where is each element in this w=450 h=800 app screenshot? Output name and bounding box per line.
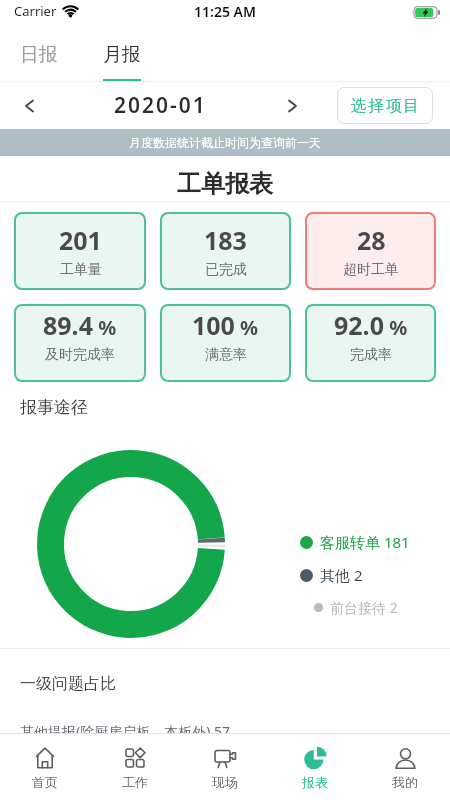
staticText: 一级问题占比: [20, 674, 116, 694]
staticText: 2020-01: [114, 91, 207, 120]
staticText: 首页: [32, 774, 58, 790]
button[interactable]: 183: [160, 212, 291, 290]
button[interactable]: 28: [305, 212, 436, 290]
button[interactable]: 日报: [20, 28, 58, 82]
staticText: 报表: [302, 774, 328, 790]
button[interactable]: 月报: [103, 28, 141, 82]
button[interactable]: 工作: [90, 734, 180, 800]
staticText: 100 %: [192, 308, 259, 342]
button[interactable]: 100 %: [160, 304, 291, 382]
staticText: 客服转单 181: [320, 532, 410, 552]
staticText: 月报: [103, 43, 141, 67]
staticText: 选择项目: [350, 96, 420, 116]
staticText: 月度数据统计截止时间为查询前一天: [129, 135, 321, 150]
staticText: 201: [59, 223, 102, 257]
button[interactable]: 首页: [0, 734, 90, 800]
staticText: 我的: [392, 774, 418, 790]
staticText: 及时完成率: [45, 346, 115, 364]
staticText: 完成率: [350, 346, 392, 364]
button[interactable]: 92.0 %: [305, 304, 436, 382]
staticText: 其他 2: [320, 565, 363, 585]
staticText: 报事途径: [20, 397, 88, 418]
staticText: 前台接待 2: [330, 598, 398, 617]
button[interactable]: 201: [14, 212, 146, 290]
staticText: 92.0 %: [334, 308, 408, 342]
button[interactable]: 我的: [360, 734, 450, 800]
staticText: 89.4 %: [43, 308, 117, 342]
staticText: 工作: [122, 774, 148, 790]
button[interactable]: 89.4 %: [14, 304, 146, 382]
staticText: 日报: [20, 43, 58, 67]
staticText: 现场: [212, 774, 238, 790]
staticText: Carrier: [14, 2, 57, 20]
staticText: 28: [357, 223, 386, 257]
staticText: 工单量: [60, 261, 102, 279]
staticText: 已完成: [205, 261, 247, 279]
button[interactable]: 选择项目: [337, 87, 433, 124]
button[interactable]: 报表: [270, 734, 360, 800]
staticText: 183: [204, 223, 247, 257]
staticText: 其他提报(除厨房启板、本板外) 57: [20, 722, 231, 741]
button[interactable]: 现场: [180, 734, 270, 800]
staticText: 11:25 AM: [194, 2, 256, 21]
staticText: 满意率: [205, 346, 247, 364]
staticText: 工单报表: [177, 169, 273, 199]
staticText: 超时工单: [343, 261, 399, 279]
